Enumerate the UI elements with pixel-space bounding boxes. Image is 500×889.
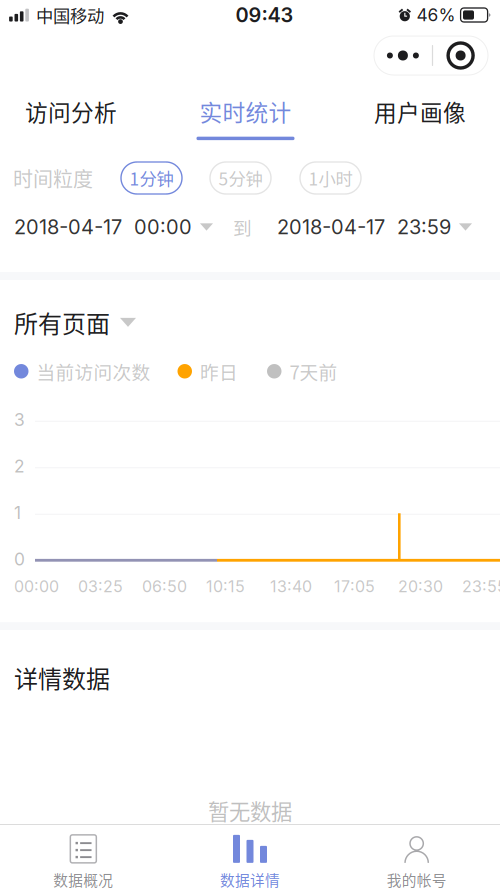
staticText: 昨日 xyxy=(200,358,238,385)
staticText: 3 xyxy=(14,409,25,430)
staticText: 13:40 xyxy=(270,577,312,596)
staticText: 1小时 xyxy=(308,165,352,191)
staticText: 06:50 xyxy=(142,577,187,596)
button[interactable]: Close xyxy=(433,36,488,75)
button[interactable]: 5分钟 xyxy=(210,162,271,194)
staticText: 用户画像 xyxy=(374,95,466,128)
staticText: 2018-04-17 23:59 xyxy=(277,215,451,239)
staticText: 所有页面 xyxy=(14,305,110,340)
staticText: 46% xyxy=(417,4,456,25)
staticText: 5分钟 xyxy=(218,165,262,191)
staticText: 20:30 xyxy=(398,577,443,596)
staticText: 7天前 xyxy=(289,358,337,385)
staticText: 到 xyxy=(233,213,252,240)
staticText: 时间粒度 xyxy=(13,163,93,192)
staticText: 00:00 xyxy=(14,577,59,596)
button[interactable]: 数据详情 xyxy=(167,824,333,889)
staticText: 2018-04-17 00:00 xyxy=(14,215,192,239)
staticText: 访问分析 xyxy=(25,95,117,128)
staticText: 实时统计 xyxy=(199,95,291,128)
staticText: 1 xyxy=(14,502,21,523)
button[interactable]: 1分钟 xyxy=(121,162,182,194)
button[interactable]: 实时统计 xyxy=(196,81,294,145)
staticText: 03:25 xyxy=(78,577,123,596)
staticText: 暂无数据 xyxy=(208,795,292,826)
staticText: 17:05 xyxy=(334,577,375,596)
button[interactable]: 用户画像 xyxy=(371,81,469,145)
button[interactable]: 访问分析 xyxy=(22,81,120,145)
staticText: 中国移动 xyxy=(36,2,104,28)
staticText: 10:15 xyxy=(206,577,245,596)
staticText: 详情数据 xyxy=(14,660,110,695)
staticText: 09:43 xyxy=(235,3,293,27)
staticText: 我的帐号 xyxy=(387,869,447,889)
staticText: 数据概况 xyxy=(53,869,113,889)
button[interactable]: More xyxy=(374,36,432,75)
staticText: 1分钟 xyxy=(129,165,173,191)
button[interactable]: 数据概况 xyxy=(0,824,167,889)
staticText: 23:55 xyxy=(462,577,500,596)
staticText: 0 xyxy=(14,549,25,570)
staticText: 数据详情 xyxy=(220,869,280,889)
button[interactable]: 我的帐号 xyxy=(333,824,500,889)
staticText: 当前访问次数 xyxy=(36,358,150,385)
staticText: 2 xyxy=(14,456,25,477)
button[interactable]: 1小时 xyxy=(300,162,361,194)
